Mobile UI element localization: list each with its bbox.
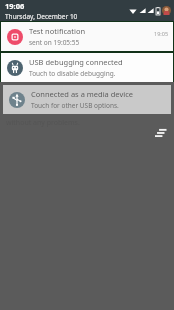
button[interactable]: Test notification bbox=[1, 22, 173, 51]
staticText: sent on 19:05:55 bbox=[29, 38, 80, 47]
button[interactable]: USB debugging connected bbox=[1, 53, 173, 82]
staticText: Touch to disable debugging. bbox=[29, 69, 116, 78]
staticText: Congratulations! bbox=[6, 86, 92, 101]
staticText: USB debugging connected bbox=[29, 57, 123, 67]
button[interactable]: Clear all notifications bbox=[153, 125, 169, 141]
staticText: 19:05 bbox=[154, 30, 169, 37]
staticText: 19:06 bbox=[5, 1, 25, 11]
staticText: Test notification bbox=[29, 26, 86, 36]
staticText: Connected as a media device bbox=[31, 89, 133, 99]
staticText: Thursday, December 10 bbox=[5, 12, 78, 21]
button[interactable]: Connected as a media device bbox=[3, 85, 171, 114]
staticText: Touch for other USB options. bbox=[31, 101, 119, 110]
